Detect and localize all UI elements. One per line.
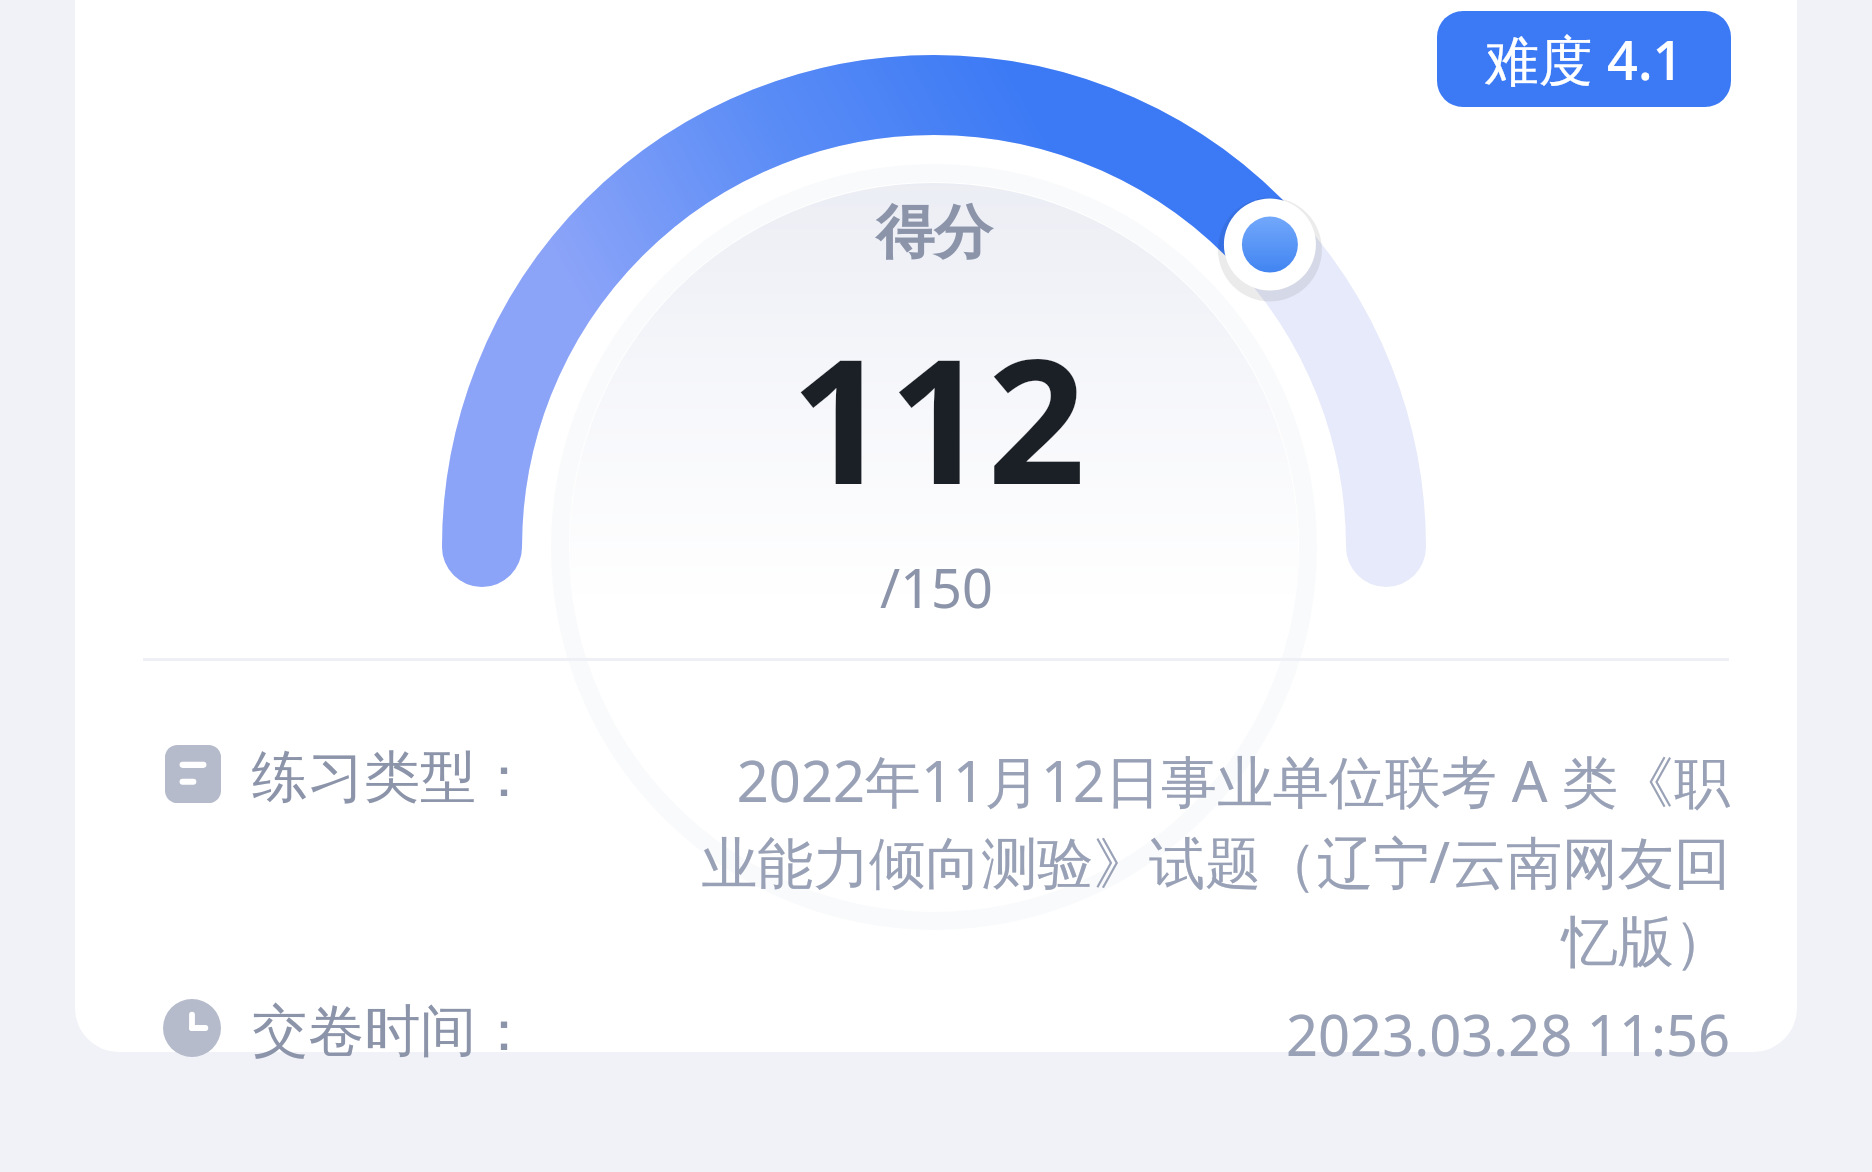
staticText: 2023.03.28 11:56 <box>1000 996 1730 1072</box>
staticText: /150 <box>880 550 993 624</box>
staticText: 难度 4.1 <box>1485 22 1684 96</box>
button[interactable]: 2023.03.28 11:56 <box>1000 996 1730 1072</box>
button[interactable]: 2022年11月12日事业单位联考 A 类《职业能力倾向测验》试题（辽宁/云南网… <box>690 742 1730 978</box>
other: Practice type <box>165 745 221 803</box>
staticText: 得分 <box>876 196 992 269</box>
staticText: 112 <box>790 300 1086 534</box>
staticText: 练习类型： <box>252 742 532 813</box>
button[interactable]: 难度 4.1 <box>1437 11 1731 107</box>
staticText: 交卷时间： <box>252 996 532 1067</box>
other: Submit time <box>163 999 221 1057</box>
staticText: 2022年11月12日事业单位联考 A 类《职业能力倾向测验》试题（辽宁/云南网… <box>690 742 1730 978</box>
